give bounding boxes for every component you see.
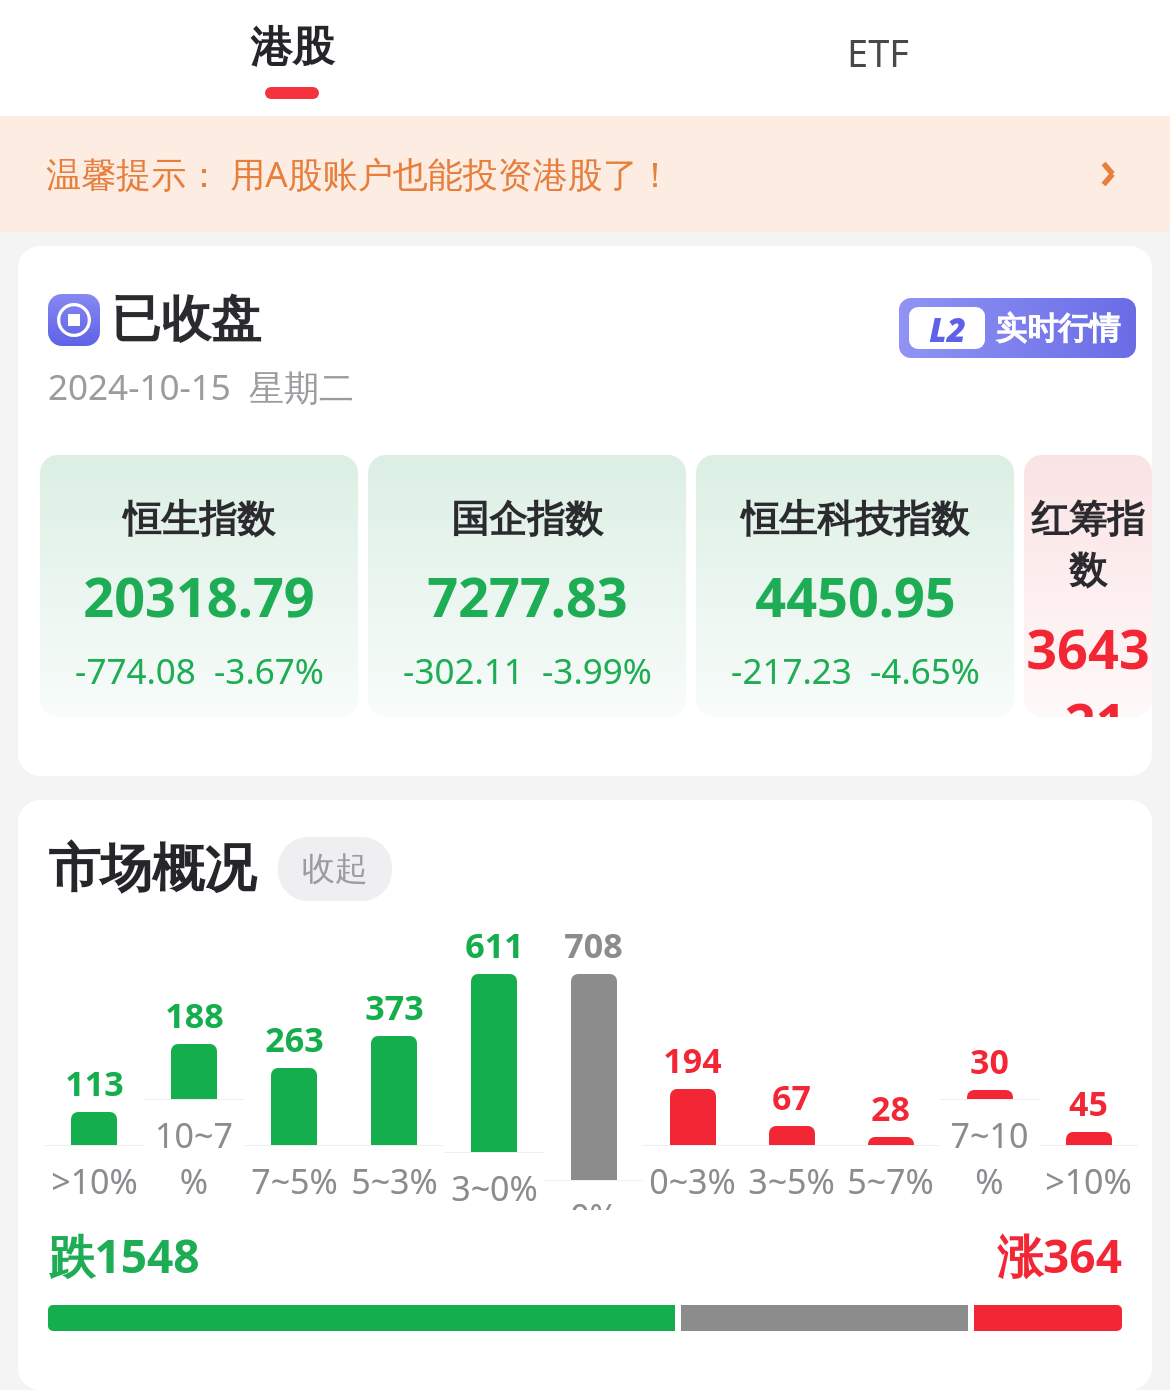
button[interactable]: ETF (810, 0, 946, 116)
staticText: -217.23 (731, 647, 852, 695)
staticText: ETF (847, 26, 909, 78)
staticText: 0% (570, 1193, 618, 1210)
staticText: 30 (970, 1038, 1009, 1084)
staticText: L2 (929, 307, 966, 349)
staticText: -3.67% (214, 647, 324, 695)
staticText: 红筹指数 (1024, 495, 1152, 595)
staticText: 温馨提示： 用A股账户也能投资港股了！ (46, 150, 673, 198)
other: 查看详情 (1086, 152, 1130, 196)
button[interactable]: 恒生科技指数 (696, 455, 1014, 717)
staticText: 10~7% (144, 1112, 244, 1204)
staticText: 5~3% (351, 1158, 438, 1204)
staticText: 港股 (250, 21, 334, 74)
staticText: 20318.79 (83, 559, 315, 633)
staticText: -774.08 (75, 647, 196, 695)
staticText: 2024-10-15 星期二 (48, 363, 354, 411)
staticText: 7277.83 (427, 559, 628, 633)
staticText: -3.99% (542, 647, 652, 695)
staticText: 恒生科技指数 (741, 495, 969, 543)
staticText: 194 (663, 1037, 722, 1083)
staticText: -4.65% (870, 647, 980, 695)
staticText: 708 (564, 922, 623, 968)
staticText: >10% (1045, 1158, 1132, 1204)
staticText: 263 (265, 1016, 324, 1062)
button[interactable]: 红筹指数 (1024, 455, 1152, 717)
staticText: 收起 (302, 848, 368, 890)
staticText: 国企指数 (451, 495, 603, 543)
staticText: 实时行情 (996, 309, 1120, 348)
staticText: 188 (165, 992, 224, 1038)
button[interactable]: L2 (899, 298, 1136, 358)
staticText: 3~0% (451, 1165, 538, 1210)
button[interactable]: 恒生指数 (40, 455, 358, 717)
staticText: 4450.95 (755, 559, 956, 633)
staticText: 3~5% (748, 1158, 835, 1204)
staticText: 涨364 (997, 1224, 1122, 1287)
staticText: 67 (772, 1074, 811, 1120)
staticText: 0~3% (649, 1158, 736, 1204)
staticText: -302.11 (403, 647, 524, 695)
button[interactable]: 收起 (278, 837, 392, 901)
staticText: 5~7% (847, 1158, 934, 1204)
staticText: 3643.21 (1024, 611, 1152, 717)
staticText: 已收盘 (111, 288, 261, 351)
staticText: 跌1548 (48, 1224, 200, 1287)
staticText: 611 (465, 922, 524, 968)
button[interactable]: 港股 (224, 0, 360, 116)
staticText: >10% (51, 1158, 138, 1204)
staticText: 7~10% (940, 1112, 1039, 1204)
staticText: 恒生指数 (123, 495, 275, 543)
staticText: 373 (365, 984, 424, 1030)
staticText: 45 (1069, 1080, 1108, 1126)
staticText: 28 (871, 1085, 910, 1131)
button[interactable]: 温馨提示： 用A股账户也能投资港股了！ (0, 116, 1170, 232)
staticText: 市场概况 (48, 836, 256, 902)
button[interactable]: 国企指数 (368, 455, 686, 717)
staticText: 113 (65, 1060, 124, 1106)
staticText: 7~5% (251, 1158, 338, 1204)
